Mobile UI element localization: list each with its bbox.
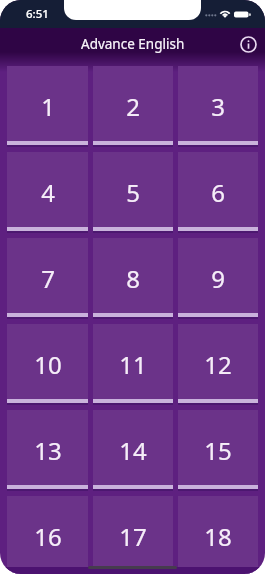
button[interactable]: 11 (93, 324, 173, 405)
button[interactable]: 18 (178, 496, 258, 574)
staticText: 13 (34, 434, 62, 467)
button[interactable]: 16 (7, 496, 88, 574)
button[interactable]: 13 (7, 410, 88, 491)
button[interactable]: 1 (7, 66, 88, 147)
staticText: 10 (34, 348, 62, 381)
staticText: 9 (211, 262, 225, 295)
button[interactable]: 6 (178, 152, 258, 233)
button[interactable]: 3 (178, 66, 258, 147)
button[interactable]: 12 (178, 324, 258, 405)
staticText: 18 (204, 520, 232, 553)
staticText: 6 (211, 176, 225, 209)
staticText: Advance English (81, 35, 185, 53)
button[interactable]: 9 (178, 238, 258, 319)
button[interactable]: Info (236, 32, 260, 56)
staticText: 7 (41, 262, 55, 295)
staticText: 16 (34, 520, 62, 553)
button[interactable]: 8 (93, 238, 173, 319)
button[interactable]: 7 (7, 238, 88, 319)
staticText: 14 (119, 434, 147, 467)
button[interactable]: 5 (93, 152, 173, 233)
staticText: 12 (204, 348, 232, 381)
staticText: 17 (119, 520, 147, 553)
staticText: 1 (41, 90, 55, 123)
button[interactable]: 10 (7, 324, 88, 405)
staticText: 4 (41, 176, 55, 209)
button[interactable]: 4 (7, 152, 88, 233)
staticText: 5 (126, 176, 140, 209)
staticText: 2 (126, 90, 140, 123)
staticText: 8 (126, 262, 140, 295)
button[interactable]: 15 (178, 410, 258, 491)
button[interactable]: 14 (93, 410, 173, 491)
staticText: 3 (211, 90, 225, 123)
staticText: 6:51 (26, 6, 49, 22)
staticText: 15 (204, 434, 232, 467)
staticText: 11 (119, 348, 147, 381)
button[interactable]: 17 (93, 496, 173, 574)
button[interactable]: 2 (93, 66, 173, 147)
